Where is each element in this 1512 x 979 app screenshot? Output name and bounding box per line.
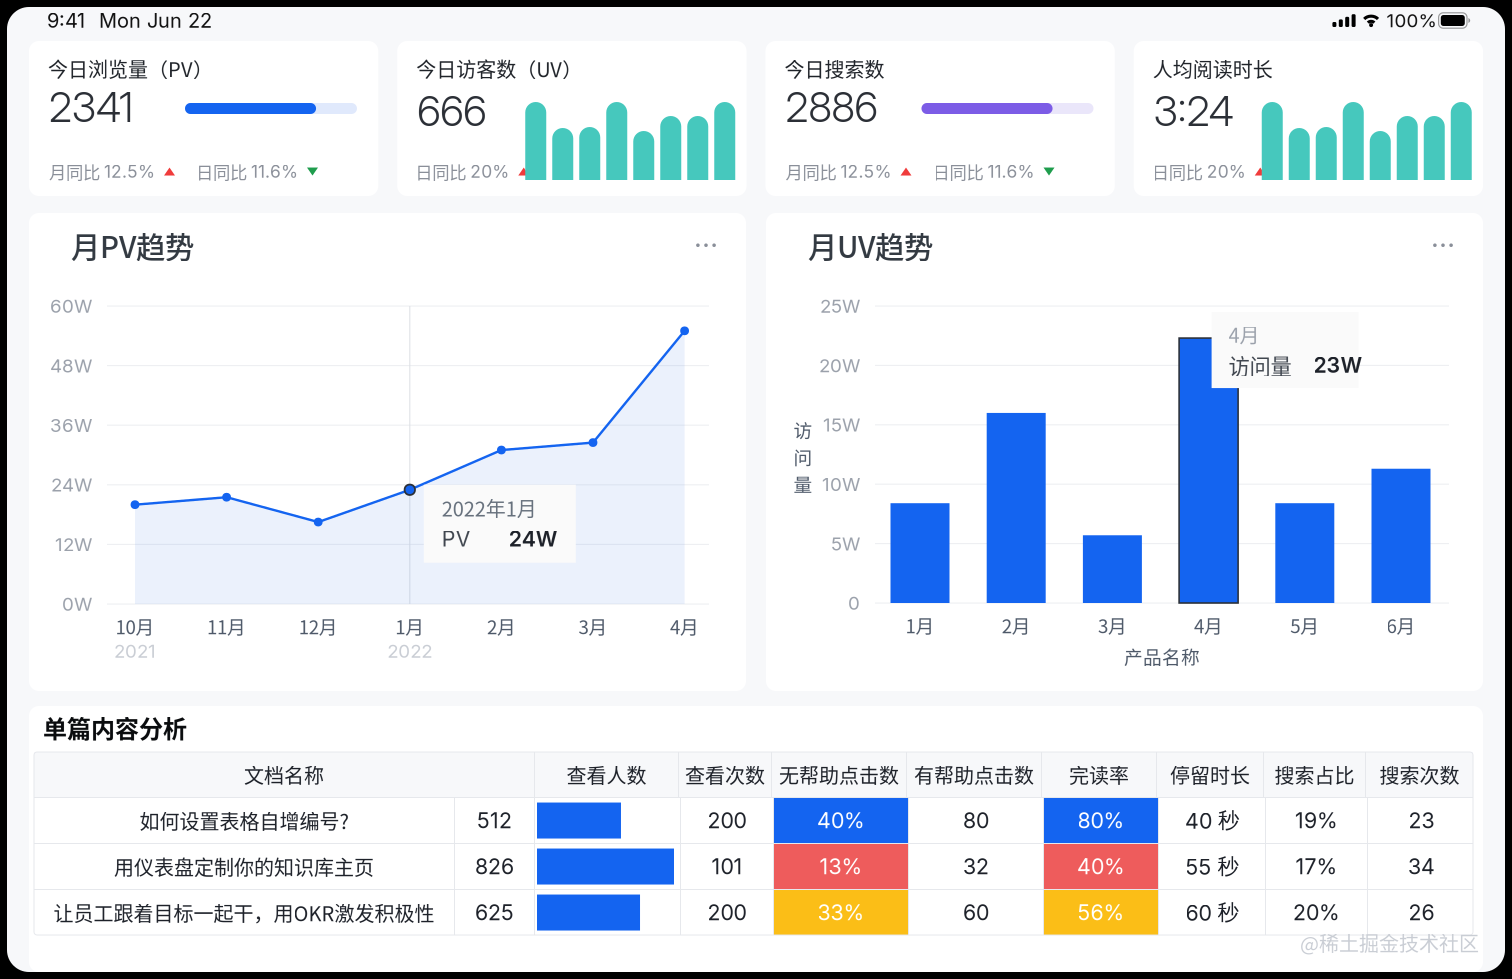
staticText: 0 <box>848 592 860 614</box>
staticText: 2886 <box>785 82 877 132</box>
staticText: 100% <box>1387 9 1437 32</box>
staticText: 12月 <box>299 612 338 639</box>
staticText: 60 秒 <box>1185 899 1238 926</box>
staticText: 3月 <box>1098 611 1127 638</box>
staticText: 5W <box>831 532 860 555</box>
staticText: 2021 <box>114 640 156 662</box>
button[interactable]: 今日搜索数 <box>765 41 1115 196</box>
staticText: 17% <box>1295 854 1337 879</box>
staticText: 200 <box>707 808 746 833</box>
staticText: 13% <box>819 854 862 879</box>
staticText: 查看人数 <box>566 760 646 789</box>
staticText: 2022年1月 <box>442 493 537 522</box>
button[interactable]: 今日访客数（UV） <box>397 41 746 196</box>
staticText: 20% <box>470 161 509 182</box>
staticText: 无帮助点击数 <box>779 760 899 789</box>
staticText: 34 <box>1408 854 1435 879</box>
staticText: 如何设置表格自增编号? <box>139 806 348 835</box>
staticText: 搜索占比 <box>1274 760 1354 789</box>
staticText: 48W <box>50 354 92 377</box>
staticText: 666 <box>417 86 486 136</box>
button[interactable]: More options <box>1423 231 1463 259</box>
staticText: 10W <box>822 473 860 495</box>
staticText: 日同比 <box>1152 159 1203 184</box>
staticText: 512 <box>477 808 512 833</box>
staticText: 4月 <box>670 612 699 639</box>
staticText: 15W <box>823 413 860 436</box>
staticText: 25W <box>820 295 860 317</box>
staticText: 查看次数 <box>685 760 765 789</box>
staticText: PV <box>442 526 471 552</box>
staticText: 33% <box>817 900 864 925</box>
staticText: 日同比 <box>415 159 466 184</box>
staticText: 19% <box>1295 808 1338 833</box>
staticText: 问 <box>793 443 812 470</box>
staticText: 32 <box>963 854 989 879</box>
button[interactable]: 月UV趋势 <box>766 213 1483 691</box>
staticText: 23 <box>1408 808 1434 833</box>
staticText: 60W <box>50 295 92 317</box>
staticText: 有帮助点击数 <box>914 760 1034 789</box>
staticText: 日同比 <box>196 159 247 184</box>
staticText: 826 <box>475 854 514 879</box>
staticText: 访 <box>793 416 812 443</box>
staticText: 56% <box>1077 900 1124 925</box>
staticText: 完读率 <box>1069 760 1129 789</box>
staticText: 20% <box>1207 161 1246 182</box>
staticText: 访问量 <box>1229 350 1292 380</box>
staticText: 日同比 <box>932 159 983 184</box>
staticText: 今日搜索数 <box>784 54 884 83</box>
staticText: 55 秒 <box>1185 853 1238 880</box>
button[interactable]: More options <box>686 231 726 259</box>
staticText: 40% <box>817 808 865 833</box>
staticText: 文档名称 <box>244 760 324 789</box>
staticText: 36W <box>50 414 92 436</box>
staticText: 让员工跟着目标一起干，用OKR激发积极性 <box>53 898 434 927</box>
staticText: 人均阅读时长 <box>1153 54 1273 83</box>
button[interactable]: 今日浏览量（PV） <box>29 41 378 196</box>
staticText: 3:24 <box>1154 86 1234 136</box>
button[interactable]: 让员工跟着目标一起干，用OKR激发积极性 <box>34 890 1473 935</box>
staticText: 12W <box>55 533 92 556</box>
staticText: 40% <box>1077 854 1125 879</box>
staticText: 23W <box>1314 352 1363 378</box>
staticText: 用仪表盘定制你的知识库主页 <box>114 852 374 881</box>
staticText: 单篇内容分析 <box>43 710 187 745</box>
staticText: 搜索次数 <box>1379 760 1459 789</box>
staticText: 2月 <box>487 612 516 639</box>
staticText: 4月 <box>1229 320 1260 349</box>
staticText: 60 <box>963 900 989 925</box>
button[interactable]: 用仪表盘定制你的知识库主页 <box>34 844 1473 889</box>
button[interactable]: 人均阅读时长 <box>1134 41 1483 196</box>
staticText: 20% <box>1293 900 1340 925</box>
staticText: 2022 <box>387 640 432 662</box>
staticText: 625 <box>475 900 514 925</box>
staticText: 月同比 <box>785 159 836 184</box>
staticText: 11.6% <box>251 161 298 182</box>
staticText: 2341 <box>49 82 133 132</box>
staticText: 今日访客数（UV） <box>416 54 582 83</box>
staticText: 40 秒 <box>1185 807 1239 834</box>
staticText: 24W <box>51 473 92 496</box>
button[interactable]: 月PV趋势 <box>29 213 746 691</box>
staticText: 0W <box>62 593 92 615</box>
staticText: 20W <box>819 354 860 377</box>
staticText: 5月 <box>1290 611 1319 638</box>
staticText: 月UV趋势 <box>808 224 933 266</box>
staticText: 80 <box>963 808 989 833</box>
staticText: @稀土掘金技术社区 <box>1300 928 1479 957</box>
staticText: 量 <box>793 470 812 497</box>
staticText: 11月 <box>207 612 246 639</box>
staticText: 1月 <box>905 611 934 638</box>
staticText: 月同比 <box>49 159 100 184</box>
staticText: 4月 <box>1194 611 1223 638</box>
button[interactable]: 如何设置表格自增编号? <box>34 798 1473 843</box>
staticText: 200 <box>707 900 746 925</box>
staticText: 11.6% <box>987 161 1034 182</box>
staticText: 9:41 <box>47 8 85 33</box>
staticText: 今日浏览量（PV） <box>48 54 213 83</box>
staticText: 12.5% <box>104 161 155 182</box>
staticText: 1月 <box>395 612 424 639</box>
staticText: 101 <box>711 854 742 879</box>
staticText: 26 <box>1408 900 1434 925</box>
